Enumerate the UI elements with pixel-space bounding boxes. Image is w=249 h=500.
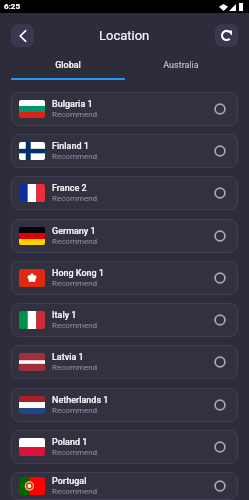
- button[interactable]: Back: [11, 24, 34, 47]
- staticText: Recommend: [52, 279, 98, 288]
- button[interactable]: Refresh: [215, 24, 238, 47]
- button[interactable]: Latvia 1: [11, 345, 238, 379]
- button[interactable]: Netherlands 1: [11, 388, 238, 422]
- staticText: Recommend: [52, 406, 98, 415]
- staticText: Portugal: [52, 476, 87, 487]
- staticText: Recommend: [52, 487, 98, 496]
- button[interactable]: France 2: [11, 176, 238, 210]
- staticText: 6:25: [4, 2, 21, 11]
- button[interactable]: Finland 1: [11, 134, 238, 168]
- button[interactable]: Australia: [124, 58, 237, 78]
- staticText: Australia: [163, 60, 199, 71]
- staticText: Recommend: [52, 237, 98, 246]
- button[interactable]: Germany 1: [11, 219, 238, 253]
- staticText: Netherlands 1: [52, 395, 109, 406]
- staticText: Recommend: [52, 448, 98, 457]
- staticText: Bulgaria 1: [52, 99, 93, 110]
- staticText: Global: [55, 60, 81, 71]
- staticText: Recommend: [52, 194, 98, 203]
- staticText: Hong Kong 1: [52, 268, 104, 279]
- staticText: Italy 1: [52, 310, 77, 321]
- staticText: Recommend: [52, 110, 98, 119]
- button[interactable]: Portugal: [11, 472, 238, 500]
- button[interactable]: Global: [12, 58, 124, 78]
- staticText: Finland 1: [52, 141, 89, 152]
- staticText: Recommend: [52, 321, 98, 330]
- staticText: Location: [99, 28, 150, 43]
- staticText: Latvia 1: [52, 352, 84, 363]
- button[interactable]: Italy 1: [11, 303, 238, 337]
- staticText: France 2: [52, 183, 87, 194]
- button[interactable]: Bulgaria 1: [11, 92, 238, 126]
- staticText: Recommend: [52, 363, 98, 372]
- staticText: Germany 1: [52, 226, 96, 237]
- staticText: Recommend: [52, 152, 98, 161]
- button[interactable]: Hong Kong 1: [11, 261, 238, 295]
- button[interactable]: Poland 1: [11, 430, 238, 464]
- staticText: Poland 1: [52, 437, 88, 448]
